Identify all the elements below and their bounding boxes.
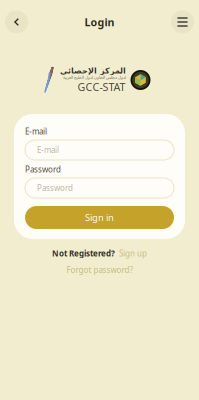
staticText: Forgot password? xyxy=(66,265,132,275)
button[interactable]: Menu xyxy=(171,10,194,33)
button[interactable]: Sign up xyxy=(119,248,147,259)
staticText: Sign in xyxy=(85,211,114,224)
staticText: GCC-STAT xyxy=(77,80,125,94)
staticText: المركز الإحصائي xyxy=(59,66,125,75)
staticText: Sign up xyxy=(119,248,147,259)
staticText: Login xyxy=(84,15,114,29)
button[interactable]: Sign in xyxy=(25,206,174,229)
staticText: لدول مجلس التعاون لدول الخليج العربية xyxy=(62,75,125,80)
staticText: E-mail xyxy=(37,145,59,155)
staticText: Password xyxy=(25,164,61,175)
staticText: Not Registered? xyxy=(52,248,115,259)
staticText: Password xyxy=(37,183,73,193)
button[interactable]: Back xyxy=(5,10,28,33)
staticText: E-mail xyxy=(25,126,47,137)
button[interactable]: Forgot password? xyxy=(66,265,132,275)
